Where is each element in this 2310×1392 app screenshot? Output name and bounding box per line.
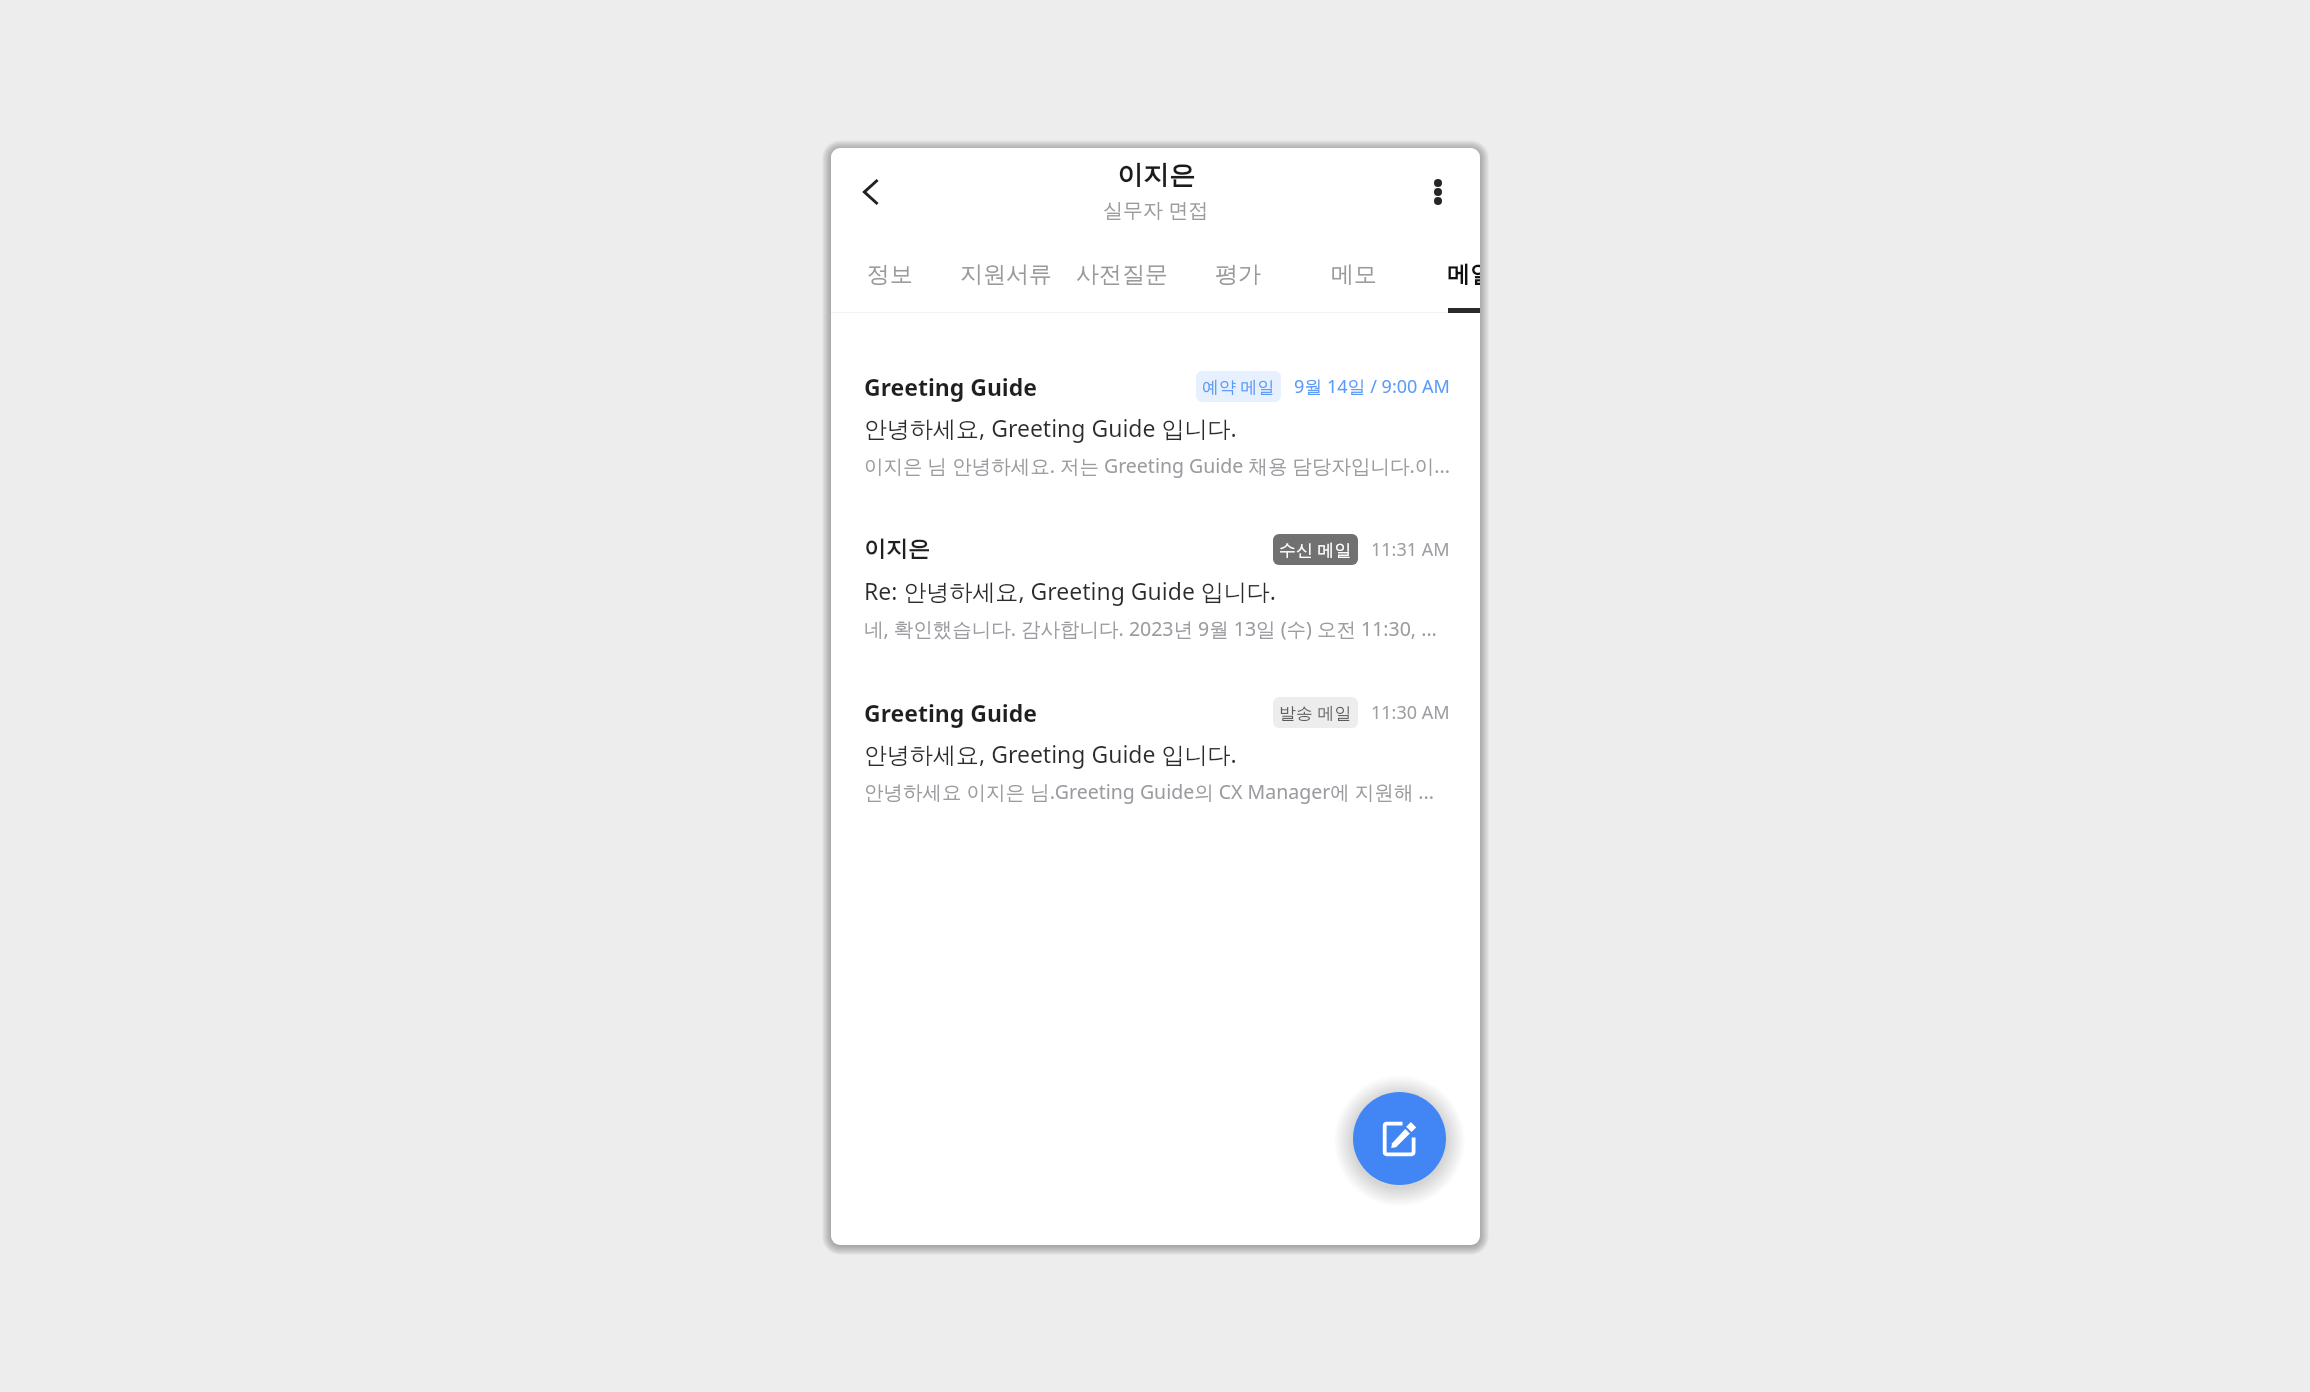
button[interactable]: Greeting Guide (831, 366, 1480, 516)
staticText: Re: 안녕하세요, Greeting Guide 입니다. (864, 575, 1277, 606)
button[interactable]: 메일 (1412, 253, 1480, 313)
staticText: 수신 메일 (1279, 538, 1352, 561)
staticText: 이지은 님 안녕하세요. 저는 Greeting Guide 채용 담당자입니다… (864, 452, 1450, 479)
staticText: 11:31 AM (1371, 537, 1450, 562)
staticText: 평가 (1215, 260, 1261, 289)
staticText: 이지은 (864, 535, 930, 563)
staticText: 정보 (867, 260, 913, 289)
button[interactable]: 이지은 (831, 529, 1480, 679)
staticText: Greeting Guide (864, 371, 1038, 402)
staticText: 이지은 (1117, 159, 1195, 192)
staticText: 메일 (1447, 260, 1480, 289)
button[interactable]: 지원서류 (948, 253, 1064, 313)
button[interactable]: 정보 (832, 253, 948, 313)
staticText: 사전질문 (1076, 260, 1168, 289)
button[interactable]: More options (1414, 168, 1462, 216)
staticText: 9월 14일 / 9:00 AM (1294, 374, 1450, 399)
staticText: 안녕하세요, Greeting Guide 입니다. (864, 738, 1237, 769)
staticText: 지원서류 (960, 260, 1052, 289)
staticText: 실무자 면접 (1103, 196, 1209, 223)
staticText: 안녕하세요, Greeting Guide 입니다. (864, 412, 1237, 443)
staticText: 11:30 AM (1371, 700, 1450, 725)
button[interactable]: 메모 (1296, 253, 1412, 313)
button[interactable]: 평가 (1180, 253, 1296, 313)
staticText: 안녕하세요 이지은 님.Greeting Guide의 CX Manager에 … (864, 778, 1435, 805)
staticText: Greeting Guide (864, 697, 1038, 728)
staticText: 발송 메일 (1279, 701, 1352, 724)
staticText: 네, 확인했습니다. 감사합니다. 2023년 9월 13일 (수) 오전 11… (864, 615, 1437, 642)
staticText: 예약 메일 (1202, 375, 1275, 398)
staticText: 메모 (1331, 260, 1377, 289)
button[interactable]: 사전질문 (1064, 253, 1180, 313)
button[interactable]: Greeting Guide (831, 692, 1480, 842)
button[interactable]: Back (847, 168, 895, 216)
button[interactable]: Compose mail (1353, 1092, 1446, 1185)
